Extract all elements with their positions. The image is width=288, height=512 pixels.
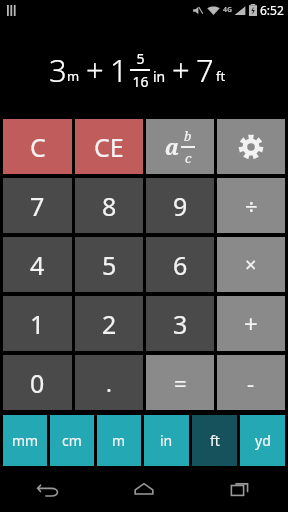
button[interactable]: Minus: [217, 355, 285, 410]
staticText: ft: [210, 431, 220, 450]
staticText: mm: [12, 431, 39, 450]
button[interactable]: mm: [3, 415, 47, 466]
staticText: 5: [136, 49, 145, 68]
button[interactable]: 1: [3, 296, 72, 351]
button[interactable]: in: [144, 415, 189, 466]
button[interactable]: 6: [146, 237, 214, 292]
staticText: 7: [196, 49, 214, 91]
staticText: b: [184, 127, 192, 145]
button[interactable]: 3: [146, 296, 214, 351]
button[interactable]: Settings: [217, 119, 285, 174]
button[interactable]: Back: [0, 466, 96, 512]
button[interactable]: Divide: [217, 178, 285, 233]
button[interactable]: yd: [240, 415, 285, 466]
button[interactable]: m: [97, 415, 141, 466]
button[interactable]: 2: [75, 296, 143, 351]
staticText: 3: [49, 49, 67, 91]
staticText: 4: [30, 248, 45, 282]
button[interactable]: 9: [146, 178, 214, 233]
staticText: +: [244, 307, 258, 340]
button[interactable]: Decimal point: [75, 355, 143, 410]
staticText: 1: [30, 307, 45, 341]
button[interactable]: Home: [96, 466, 192, 512]
staticText: 1: [110, 49, 128, 91]
staticText: ÷: [245, 191, 258, 221]
staticText: CE: [94, 130, 124, 164]
staticText: 4G: [223, 5, 233, 15]
staticText: m: [67, 67, 80, 85]
staticText: 9: [173, 189, 188, 223]
staticText: C: [30, 130, 46, 164]
staticText: yd: [255, 431, 271, 450]
staticText: ×: [245, 251, 257, 278]
staticText: 6:52: [260, 2, 284, 18]
staticText: =: [174, 368, 187, 398]
button[interactable]: Mixed fraction: [146, 119, 214, 174]
staticText: -: [247, 368, 255, 398]
button[interactable]: Plus: [217, 296, 285, 351]
staticText: m: [112, 431, 126, 450]
staticText: a: [165, 133, 179, 162]
staticText: +: [86, 49, 104, 91]
staticText: cm: [62, 431, 82, 450]
staticText: in: [160, 431, 173, 450]
staticText: 8: [102, 189, 117, 223]
button[interactable]: 5: [75, 237, 143, 292]
staticText: .: [106, 368, 112, 398]
button[interactable]: CE: [75, 119, 143, 174]
staticText: 3: [173, 307, 188, 341]
button[interactable]: 4: [3, 237, 72, 292]
staticText: 2: [102, 307, 117, 341]
staticText: ft: [216, 67, 226, 85]
button[interactable]: 8: [75, 178, 143, 233]
button[interactable]: ft: [192, 415, 237, 466]
button[interactable]: C: [3, 119, 72, 174]
button[interactable]: cm: [50, 415, 94, 466]
button[interactable]: 0: [3, 355, 72, 410]
staticText: c: [185, 149, 192, 167]
button[interactable]: 7: [3, 178, 72, 233]
staticText: 7: [30, 189, 45, 223]
staticText: 0: [30, 366, 45, 400]
staticText: 16: [132, 72, 149, 91]
staticText: in: [153, 67, 166, 86]
button[interactable]: Multiply: [217, 237, 285, 292]
button[interactable]: Equals: [146, 355, 214, 410]
staticText: 5: [102, 248, 117, 282]
staticText: +: [172, 49, 190, 91]
button[interactable]: Recents: [192, 466, 288, 512]
staticText: 6: [173, 248, 188, 282]
